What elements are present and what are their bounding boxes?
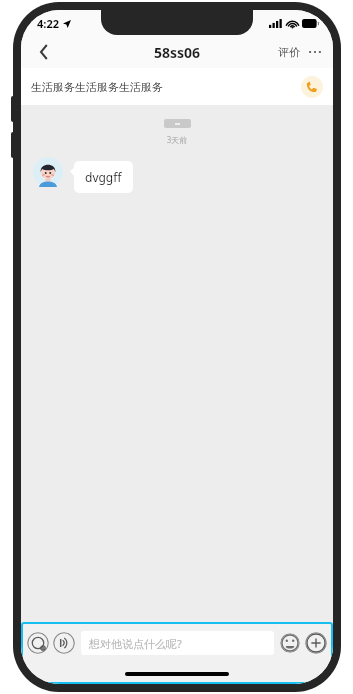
staticText: 4:22 — [37, 16, 59, 31]
button[interactable]: More options — [307, 44, 323, 60]
button[interactable]: 评价 — [276, 41, 302, 63]
button[interactable]: dvggff — [74, 161, 133, 193]
staticText: 评价 — [278, 45, 300, 59]
staticText: 58ss06 — [154, 43, 201, 62]
button[interactable]: Voice input — [53, 632, 75, 654]
button[interactable]: Call — [301, 76, 323, 98]
staticText: 想对他说点什么呢? — [89, 636, 182, 651]
button[interactable]: More — [305, 632, 327, 654]
staticText: dvggff — [85, 169, 122, 185]
staticText: 3天前 — [21, 134, 333, 145]
button[interactable]: 想对他说点什么呢? — [81, 631, 274, 655]
button[interactable]: Emoji — [280, 633, 300, 653]
button[interactable]: Back — [29, 37, 59, 67]
staticText: 生活服务生活服务生活服务 — [31, 80, 163, 94]
button[interactable]: Voice message — [27, 632, 49, 654]
